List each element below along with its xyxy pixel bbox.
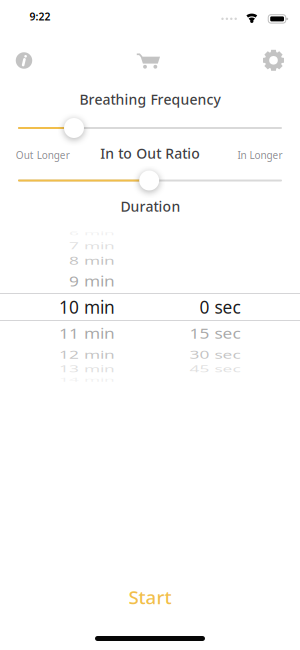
staticText: 11 min: [59, 321, 115, 345]
staticText: 7 min: [69, 234, 115, 258]
staticText: Breathing Frequency: [79, 90, 220, 109]
staticText: Start: [128, 584, 171, 610]
staticText: 6 min: [69, 221, 115, 245]
staticText: 30 sec: [189, 343, 240, 366]
staticText: In to Out Ratio: [100, 144, 200, 163]
button[interactable]: Info: [9, 45, 39, 75]
staticText: 10 min: [59, 295, 115, 319]
staticText: 14 min: [59, 368, 115, 391]
button[interactable]: Start: [90, 575, 210, 619]
staticText: 15 sec: [189, 321, 240, 345]
staticText: 8 min: [69, 249, 115, 272]
button[interactable]: Store: [132, 45, 164, 75]
button[interactable]: Settings: [258, 45, 288, 75]
staticText: 12 min: [59, 343, 115, 366]
staticText: 13 min: [59, 357, 115, 381]
staticText: 0 sec: [199, 295, 240, 319]
staticText: 9 min: [69, 269, 115, 293]
staticText: 45 sec: [189, 357, 240, 381]
staticText: Duration: [120, 197, 180, 216]
staticText: In Longer: [237, 148, 282, 162]
staticText: 9:22: [29, 9, 50, 24]
staticText: Out Longer: [16, 148, 70, 162]
